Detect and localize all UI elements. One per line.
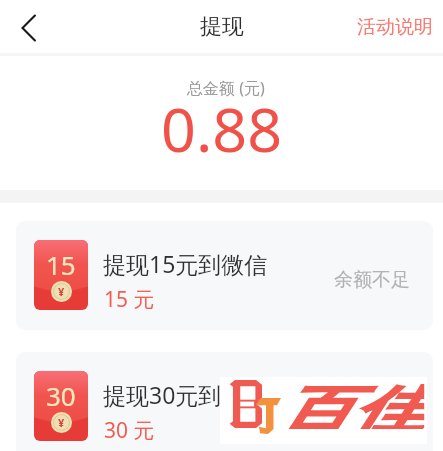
staticText: ¥ bbox=[58, 284, 65, 299]
staticText: ¥ bbox=[58, 415, 65, 430]
staticText: 提现 bbox=[200, 13, 244, 41]
staticText: 提现30元到微信 bbox=[103, 379, 268, 410]
staticText: 15 元 bbox=[104, 285, 155, 314]
staticText: 余额不足 bbox=[334, 268, 410, 292]
staticText: 15 bbox=[46, 247, 76, 282]
staticText: 百佳 bbox=[279, 378, 424, 429]
staticText: 30 元 bbox=[104, 416, 155, 445]
staticText: 活动说明 bbox=[357, 15, 433, 39]
button[interactable]: 30 bbox=[16, 352, 433, 451]
staticText: 0.88 bbox=[161, 87, 283, 170]
button[interactable]: 15 bbox=[16, 221, 433, 330]
button[interactable]: 活动说明 bbox=[345, 6, 443, 49]
staticText: 30 bbox=[46, 378, 76, 413]
button[interactable]: Back bbox=[2, 0, 54, 52]
staticText: 总金额 (元) bbox=[187, 77, 265, 99]
staticText: 提现15元到微信 bbox=[103, 248, 268, 279]
